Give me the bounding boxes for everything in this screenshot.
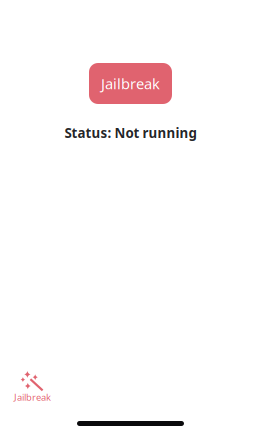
staticText: Jailbreak	[14, 391, 51, 403]
button[interactable]: Jailbreak	[89, 63, 172, 104]
staticText: Status: Not running	[64, 124, 196, 142]
button[interactable]: Jailbreak	[1, 369, 64, 418]
staticText: Jailbreak	[101, 74, 160, 93]
